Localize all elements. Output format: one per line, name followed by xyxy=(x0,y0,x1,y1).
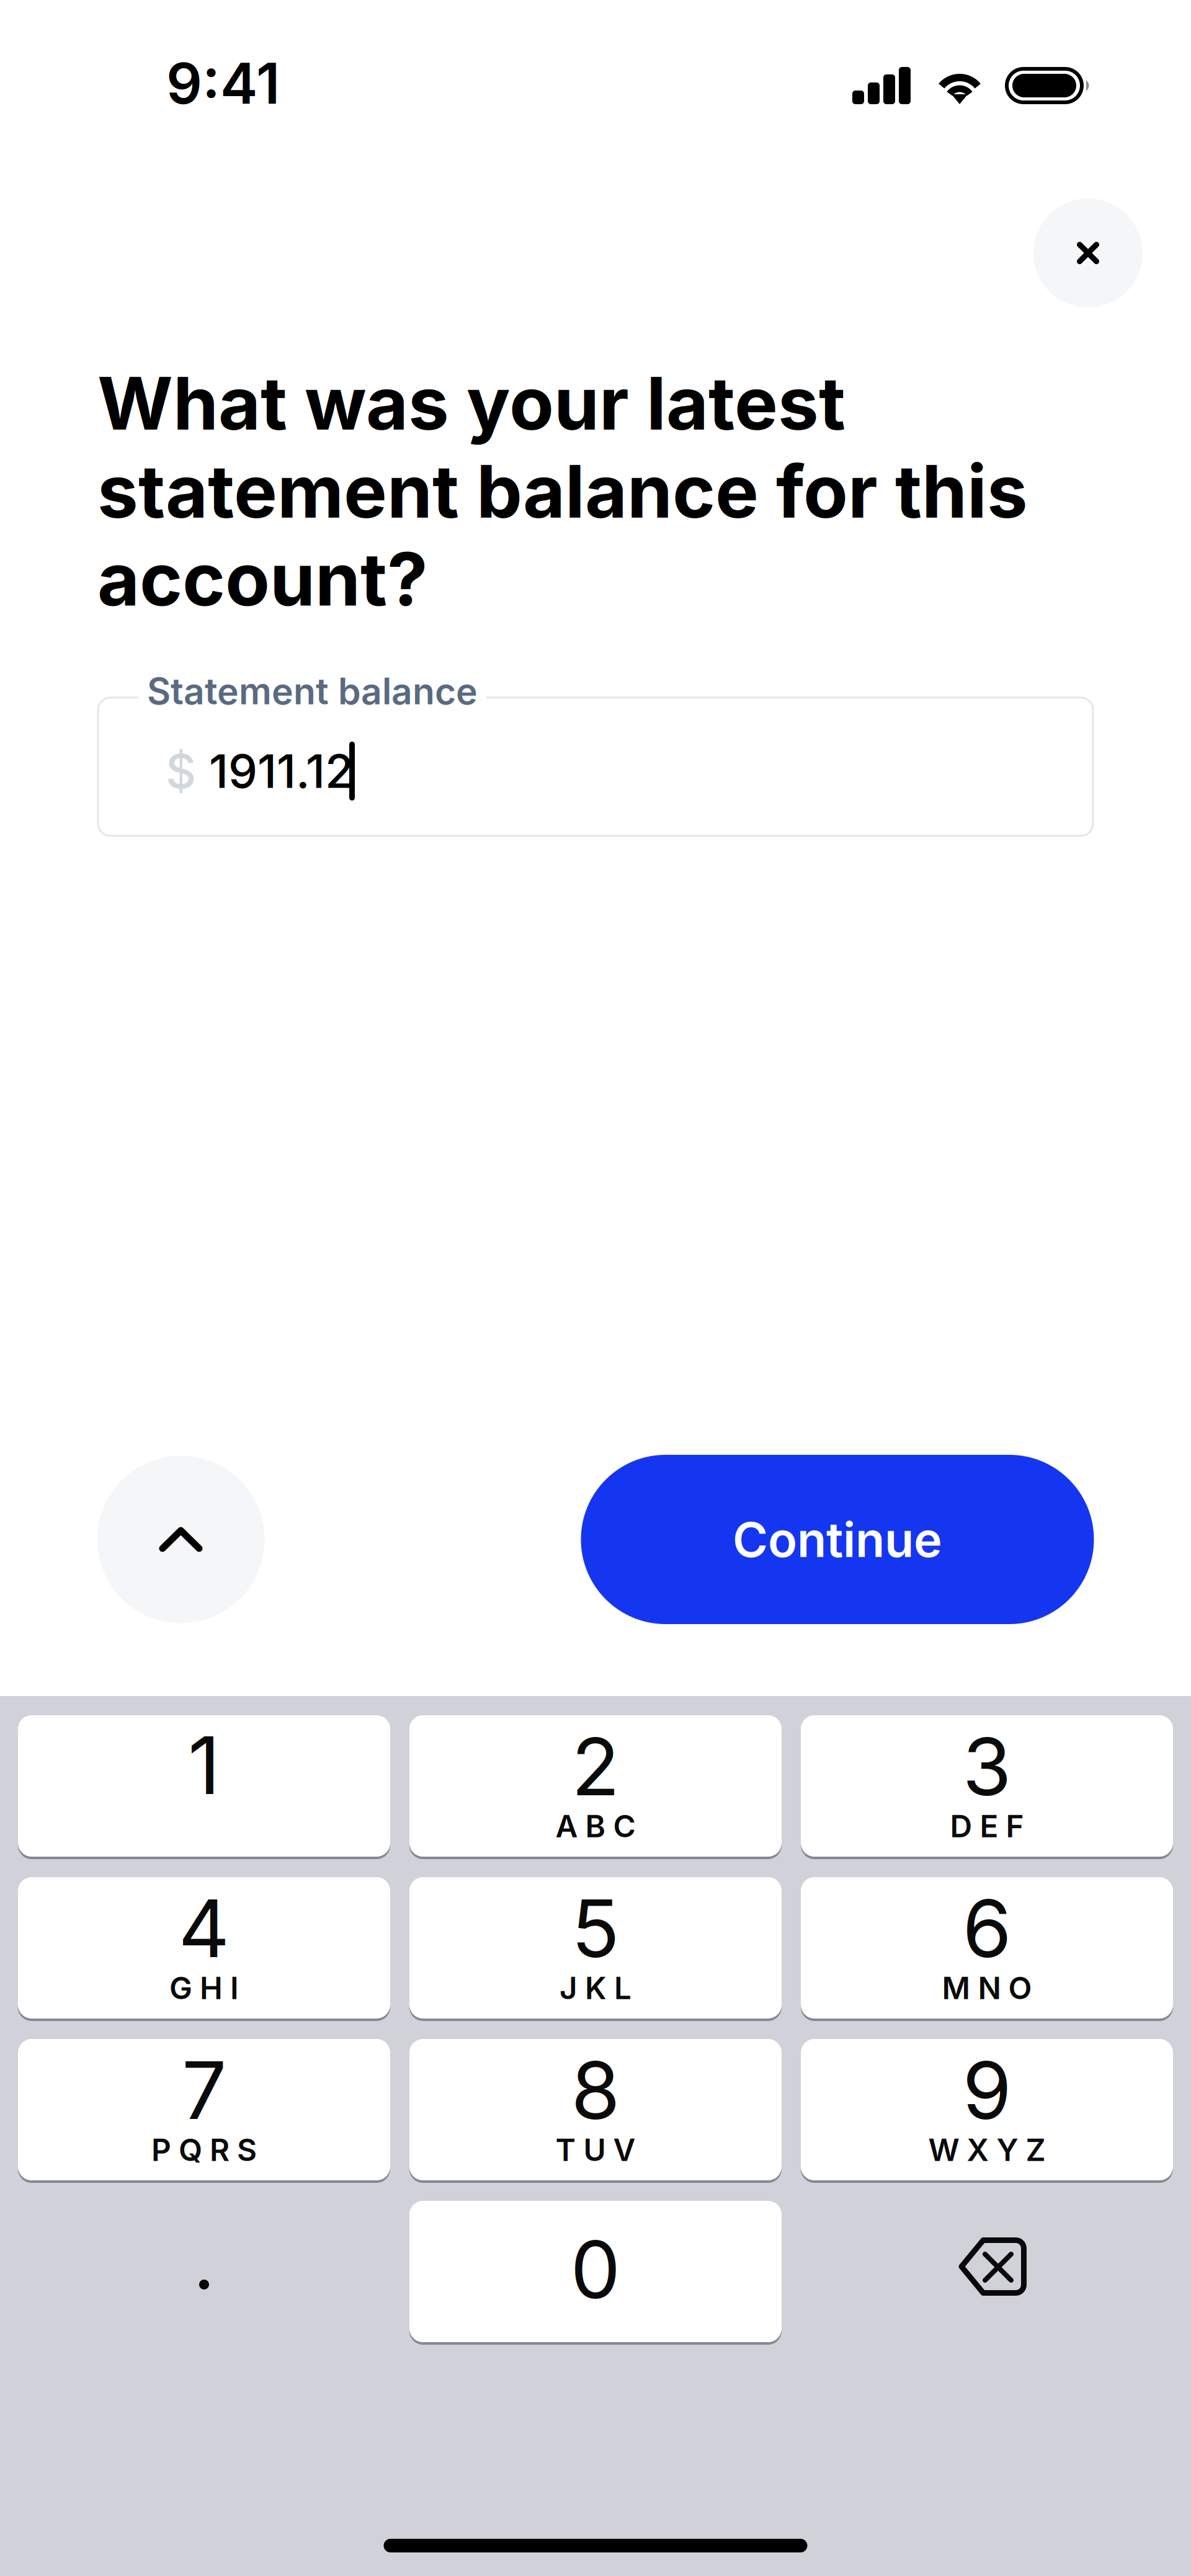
staticText: What was your latest statement balance f… xyxy=(97,359,1028,623)
staticText: $ xyxy=(166,743,196,800)
staticText: T U V xyxy=(555,2131,636,2168)
staticText: 9 xyxy=(962,2042,1011,2138)
button[interactable]: Decimal point xyxy=(18,2202,390,2343)
button[interactable]: 7 xyxy=(18,2039,390,2183)
button[interactable]: 4 xyxy=(18,1877,390,2021)
button[interactable]: 3 xyxy=(801,1715,1173,1859)
staticText: A B C xyxy=(555,1808,636,1845)
staticText: 8 xyxy=(571,2042,620,2138)
button[interactable]: Delete xyxy=(801,2202,1173,2343)
button[interactable]: 1 xyxy=(18,1715,390,1859)
button[interactable]: 0 xyxy=(409,2201,782,2345)
staticText: G H I xyxy=(169,1969,239,2006)
staticText: 1911.12 xyxy=(209,743,354,799)
staticText: 7 xyxy=(182,2042,226,2138)
staticText: P Q R S xyxy=(151,2131,257,2168)
staticText: D E F xyxy=(950,1808,1024,1845)
button[interactable]: Continue xyxy=(581,1455,1094,1624)
staticText: M N O xyxy=(942,1969,1032,2006)
staticText: Continue xyxy=(733,1510,942,1568)
staticText: 0 xyxy=(570,2221,621,2317)
button[interactable]: Collapse xyxy=(97,1456,265,1623)
button[interactable]: 2 xyxy=(409,1715,782,1859)
staticText: W X Y Z xyxy=(928,2131,1046,2168)
staticText: 9:41 xyxy=(166,49,280,117)
staticText: Statement balance xyxy=(147,669,478,713)
staticText: 6 xyxy=(962,1880,1011,1976)
staticText: J K L xyxy=(560,1969,631,2006)
button[interactable]: 6 xyxy=(801,1877,1173,2021)
staticText: 4 xyxy=(178,1880,230,1976)
button[interactable]: Close xyxy=(1033,198,1143,308)
staticText: 5 xyxy=(571,1880,620,1976)
button[interactable]: 5 xyxy=(409,1877,782,2021)
button[interactable]: 8 xyxy=(409,2039,782,2183)
staticText: 1 xyxy=(188,1717,220,1813)
button[interactable]: 9 xyxy=(801,2039,1173,2183)
staticText: 3 xyxy=(962,1718,1011,1814)
staticText: 2 xyxy=(571,1718,620,1814)
